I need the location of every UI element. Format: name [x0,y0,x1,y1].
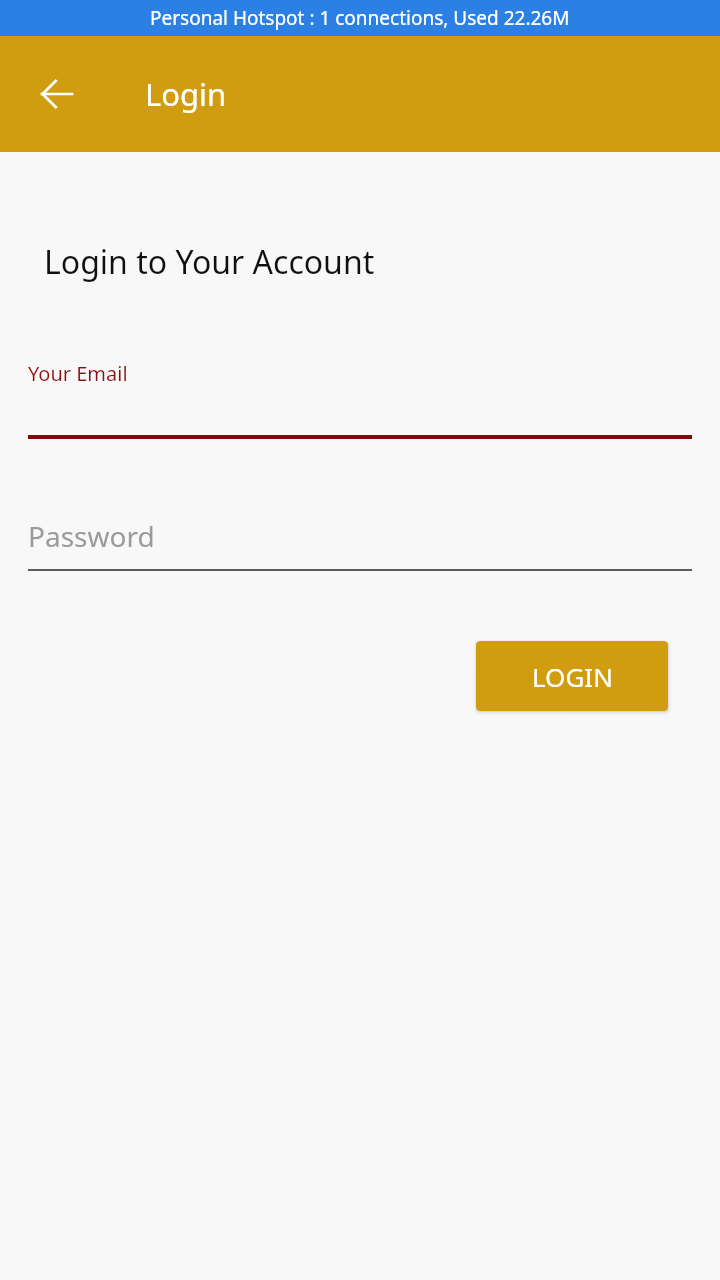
staticText: Personal Hotspot : 1 connections, Used 2… [150,5,570,31]
staticText: LOGIN [532,659,613,694]
button[interactable]: Back [18,55,96,133]
staticText: Password [28,517,155,555]
button[interactable]: LOGIN [476,641,668,711]
staticText: Your Email [28,360,128,387]
staticText: Login to Your Account [44,240,375,284]
staticText: Login [145,73,227,115]
button[interactable]: Your Email [0,360,720,439]
button[interactable]: Password [0,517,720,571]
